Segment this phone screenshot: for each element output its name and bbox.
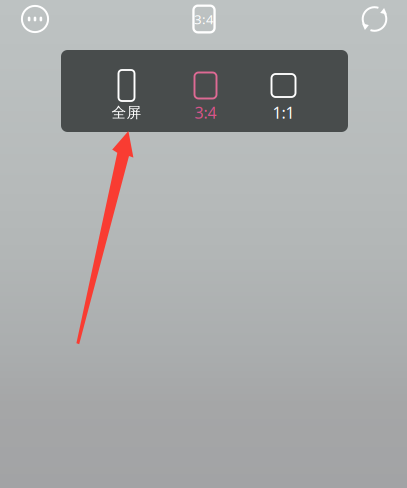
staticText: 1:1: [272, 102, 294, 123]
button[interactable]: More options: [16, 0, 54, 38]
button[interactable]: 3:4: [166, 50, 244, 132]
button[interactable]: 1:1: [244, 50, 322, 132]
staticText: 3:4: [194, 10, 214, 28]
button[interactable]: Aspect ratio 3 by 4: [185, 0, 223, 38]
staticText: 3:4: [194, 102, 216, 123]
button[interactable]: 全屏: [87, 50, 165, 132]
button[interactable]: Switch camera: [355, 0, 393, 38]
staticText: 全屏: [111, 103, 141, 121]
